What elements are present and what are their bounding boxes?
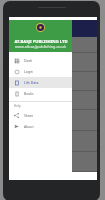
button[interactable]: AT-BASJI PUBLISHING LTD xyxy=(9,20,72,52)
staticText: Share xyxy=(24,113,34,118)
button[interactable]: About xyxy=(9,121,72,132)
staticText: Dash xyxy=(24,58,33,63)
button[interactable]: Dash xyxy=(9,55,72,66)
staticText: www.atbasjipublishing.co.uk xyxy=(15,44,66,49)
button[interactable]: Life Data xyxy=(9,77,72,88)
staticText: Life Data xyxy=(24,80,39,85)
staticText: AT-BASJI PUBLISHING LTD xyxy=(14,39,68,45)
staticText: Books xyxy=(24,91,34,96)
staticText: About xyxy=(24,124,34,129)
button[interactable]: Books xyxy=(9,88,72,99)
button[interactable]: Share xyxy=(9,110,72,121)
staticText: Help xyxy=(14,104,21,108)
staticText: Login xyxy=(24,69,33,74)
button[interactable]: Login xyxy=(9,66,72,77)
